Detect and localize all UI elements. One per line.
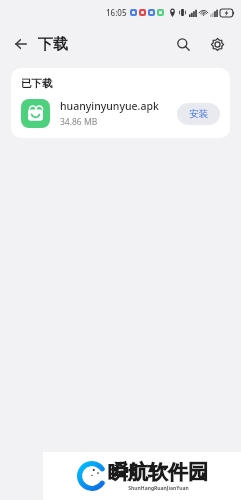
staticText: huanyinyunyue.apk [60, 99, 159, 113]
button[interactable]: huanyinyunyue.apk [21, 99, 220, 128]
staticText: ShunHangRuanJianYuan [128, 485, 189, 492]
staticText: 34.86 MB [60, 116, 98, 128]
button[interactable]: Settings [203, 30, 231, 58]
button[interactable]: Search [169, 30, 197, 58]
button[interactable]: Back [8, 31, 34, 57]
button[interactable]: 安装 [177, 103, 220, 125]
staticText: 安装 [189, 108, 208, 120]
staticText: 16:05 [106, 7, 127, 18]
staticText: 已下载 [21, 77, 53, 90]
staticText: 下载 [38, 35, 68, 54]
staticText: 瞬航软件园 [108, 460, 208, 485]
